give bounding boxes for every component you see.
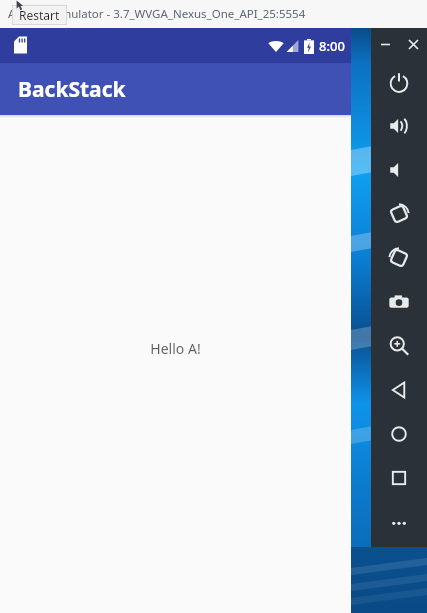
button[interactable]: Power <box>371 60 427 104</box>
staticText: BackStack <box>18 75 126 104</box>
button[interactable]: Minimize <box>371 31 399 57</box>
button[interactable]: Home <box>371 412 427 456</box>
button[interactable]: Overview <box>371 456 427 500</box>
staticText: Android Emulator - 3.7_WVGA_Nexus_One_AP… <box>8 6 306 22</box>
button[interactable]: Zoom <box>371 324 427 368</box>
button[interactable]: Volume up <box>371 104 427 148</box>
button[interactable]: Volume down <box>371 148 427 192</box>
button[interactable]: Back <box>371 368 427 412</box>
button[interactable]: Rotate left <box>371 192 427 236</box>
button[interactable]: Take screenshot <box>371 280 427 324</box>
button[interactable]: Rotate right <box>371 236 427 280</box>
staticText: Restart <box>19 7 60 23</box>
staticText: 8:00 <box>319 37 345 55</box>
staticText: Hello A! <box>150 339 201 358</box>
button[interactable]: Close <box>399 31 427 57</box>
button[interactable]: More <box>371 500 427 544</box>
button[interactable]: BackStack <box>0 63 351 115</box>
